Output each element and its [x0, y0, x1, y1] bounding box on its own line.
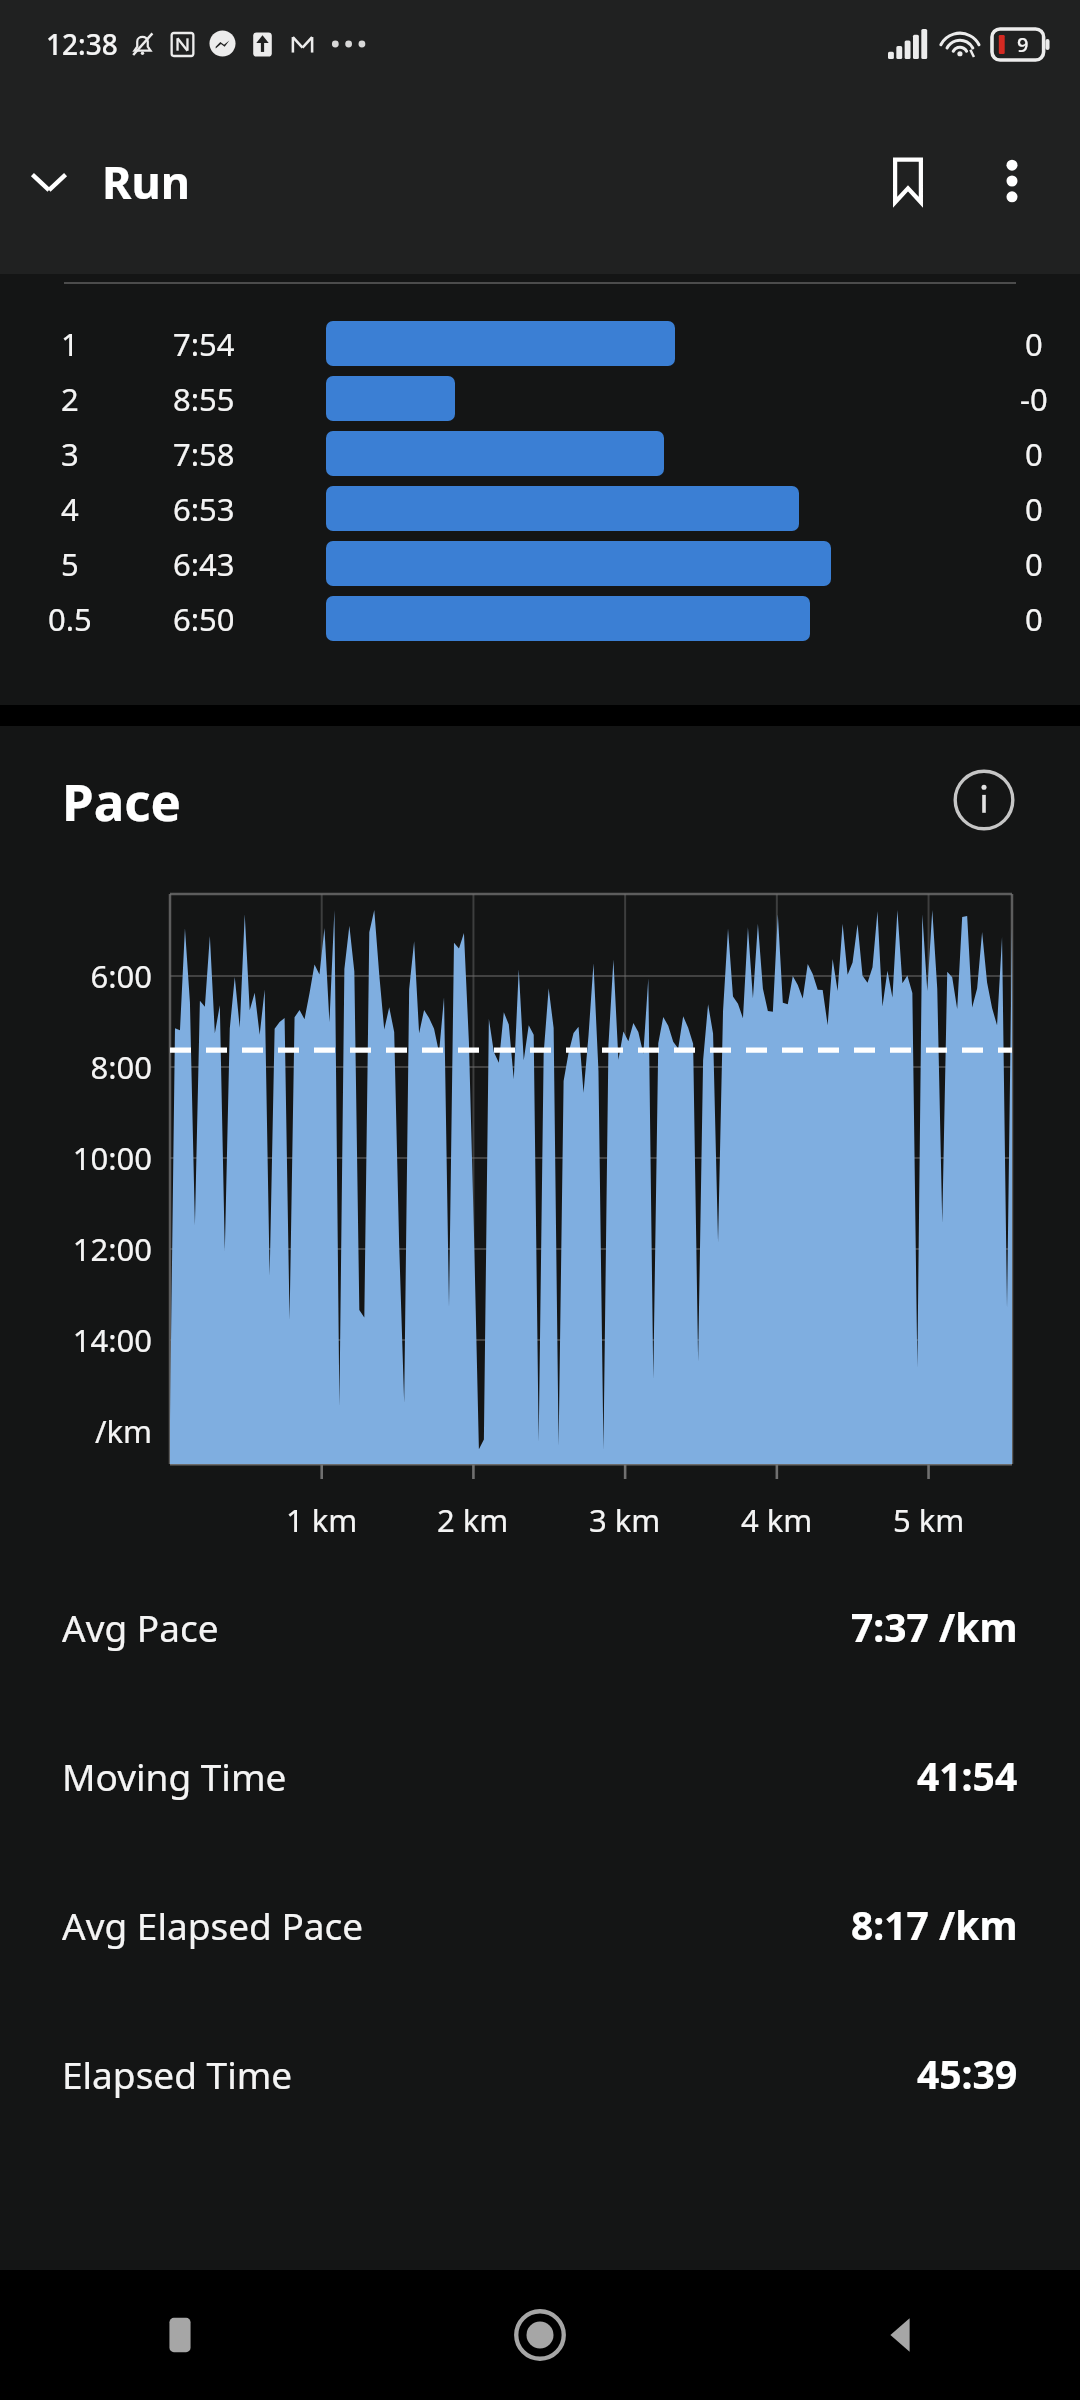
staticText: 12:00 [72, 1228, 152, 1270]
staticText: 8:00 [90, 1046, 152, 1088]
staticText: 4 km [741, 1499, 813, 1541]
staticText: Elapsed Time [62, 2049, 293, 2099]
staticText: 5 [61, 543, 79, 585]
staticText: 7:37 /km [851, 1600, 1018, 1653]
staticText: 0 [1025, 543, 1043, 585]
button[interactable]: Recent apps [0, 2270, 360, 2400]
staticText: 0 [1025, 598, 1043, 640]
button[interactable]: 2 [0, 371, 1080, 426]
staticText: 1 [61, 323, 79, 365]
button[interactable]: 3 [0, 426, 1080, 481]
staticText: 8:55 [173, 378, 235, 420]
staticText: Moving Time [62, 1751, 287, 1801]
button[interactable]: 1 [0, 316, 1080, 371]
staticText: -0 [1020, 378, 1048, 420]
staticText: 2 [61, 378, 79, 420]
button[interactable]: Elapsed Time [0, 1999, 1080, 2148]
button[interactable]: Avg Pace [0, 1552, 1080, 1701]
staticText: 0 [1025, 433, 1043, 475]
staticText: Pace [62, 766, 181, 835]
staticText: /km [94, 1410, 152, 1452]
staticText: 3 [61, 433, 79, 475]
button[interactable]: Moving Time [0, 1701, 1080, 1850]
staticText: 9 [1017, 31, 1029, 58]
staticText: Avg Elapsed Pace [62, 1900, 364, 1950]
staticText: 12:38 [46, 25, 118, 63]
staticText: 7:58 [173, 433, 235, 475]
button[interactable]: 4 [0, 481, 1080, 536]
staticText: 14:00 [72, 1319, 152, 1361]
button[interactable]: Info [950, 766, 1018, 834]
button[interactable]: Avg Elapsed Pace [0, 1850, 1080, 1999]
button[interactable]: 5 [0, 536, 1080, 591]
staticText: 5 km [893, 1499, 965, 1541]
staticText: Run [102, 151, 191, 212]
staticText: Avg Pace [62, 1602, 219, 1652]
staticText: 6:53 [173, 488, 235, 530]
button[interactable]: Collapse [0, 132, 98, 230]
staticText: 2 km [437, 1499, 509, 1541]
staticText: 10:00 [72, 1137, 152, 1179]
staticText: 6:00 [90, 955, 152, 997]
staticText: 0.5 [48, 598, 92, 640]
button[interactable]: Back [720, 2270, 1080, 2400]
staticText: 6:50 [173, 598, 235, 640]
staticText: 45:39 [917, 2047, 1018, 2100]
button[interactable]: Bookmark [856, 129, 960, 233]
staticText: 41:54 [917, 1749, 1018, 1802]
staticText: 0 [1025, 488, 1043, 530]
staticText: 8:17 /km [851, 1898, 1018, 1951]
button[interactable]: Home [360, 2270, 720, 2400]
staticText: 6:43 [173, 543, 235, 585]
staticText: 4 [61, 488, 79, 530]
button[interactable]: More options [960, 129, 1064, 233]
staticText: 3 km [589, 1499, 661, 1541]
button[interactable]: 0.5 [0, 591, 1080, 646]
staticText: 1 km [286, 1499, 358, 1541]
staticText: 0 [1025, 323, 1043, 365]
staticText: 7:54 [173, 323, 235, 365]
